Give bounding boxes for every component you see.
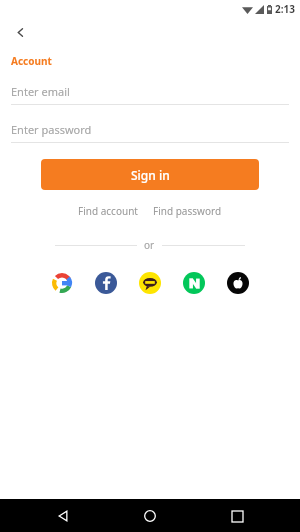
button[interactable]: Sign in with Facebook — [94, 271, 118, 295]
staticText: Account — [11, 54, 52, 68]
button[interactable]: Sign in with Apple — [226, 271, 250, 295]
staticText: Enter password — [11, 122, 92, 137]
button[interactable]: Sign in with Kakao — [138, 271, 162, 295]
staticText: Sign in — [131, 167, 170, 183]
staticText: Find password — [153, 204, 222, 218]
button[interactable]: Sign in — [41, 159, 259, 190]
staticText: or — [144, 238, 155, 252]
button[interactable]: Recent apps — [224, 503, 250, 529]
staticText: Enter email — [11, 84, 70, 99]
button[interactable]: Home — [137, 503, 163, 529]
button[interactable]: Enter password — [0, 116, 300, 143]
button[interactable]: Sign in with Google — [50, 271, 74, 295]
button[interactable]: Sign in with Naver — [182, 271, 206, 295]
button[interactable]: Enter email — [0, 78, 300, 105]
staticText: Find account — [78, 204, 138, 218]
button[interactable]: Back — [6, 18, 34, 46]
button[interactable]: Find account — [72, 202, 144, 220]
button[interactable]: Back — [50, 503, 76, 529]
staticText: 2:13 — [275, 2, 295, 16]
button[interactable]: Find password — [147, 202, 228, 220]
